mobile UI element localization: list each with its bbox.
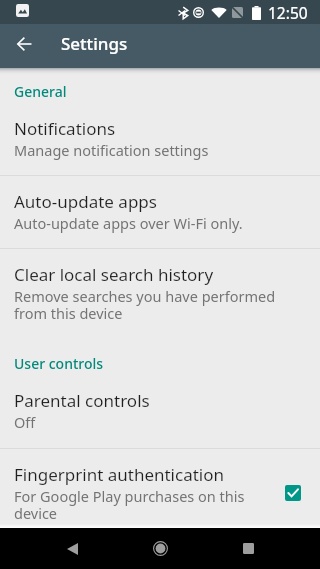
button[interactable]: Home	[126, 528, 194, 569]
staticText: Remove searches you have performed from …	[14, 286, 304, 323]
button[interactable]: Auto-update apps	[0, 176, 320, 248]
staticText: Clear local search history	[14, 263, 214, 286]
staticText: Auto-update apps	[14, 190, 157, 213]
button[interactable]: Parental controls	[0, 389, 320, 448]
staticText: User controls	[14, 354, 104, 373]
staticText: Auto-update apps over Wi-Fi only.	[14, 213, 304, 233]
staticText: 12:50	[268, 2, 308, 23]
staticText: Manage notification settings	[14, 140, 304, 160]
staticText: For Google Play purchases on this device	[14, 486, 269, 523]
staticText: Parental controls	[14, 389, 150, 412]
button[interactable]: Clear local search history	[0, 249, 320, 323]
staticText: Settings	[61, 32, 128, 55]
staticText: Off	[14, 412, 304, 432]
staticText: Fingerprint authentication	[14, 463, 225, 486]
button: User controls	[0, 354, 320, 373]
button[interactable]: Recent apps	[214, 528, 282, 569]
staticText: General	[14, 82, 67, 101]
button[interactable]: Fingerprint authentication	[0, 449, 320, 523]
button[interactable]: Back	[38, 528, 106, 569]
button[interactable]: Notifications	[0, 117, 320, 175]
button: General	[0, 82, 320, 101]
button[interactable]: Navigate up	[6, 26, 42, 62]
staticText: Notifications	[14, 117, 116, 140]
